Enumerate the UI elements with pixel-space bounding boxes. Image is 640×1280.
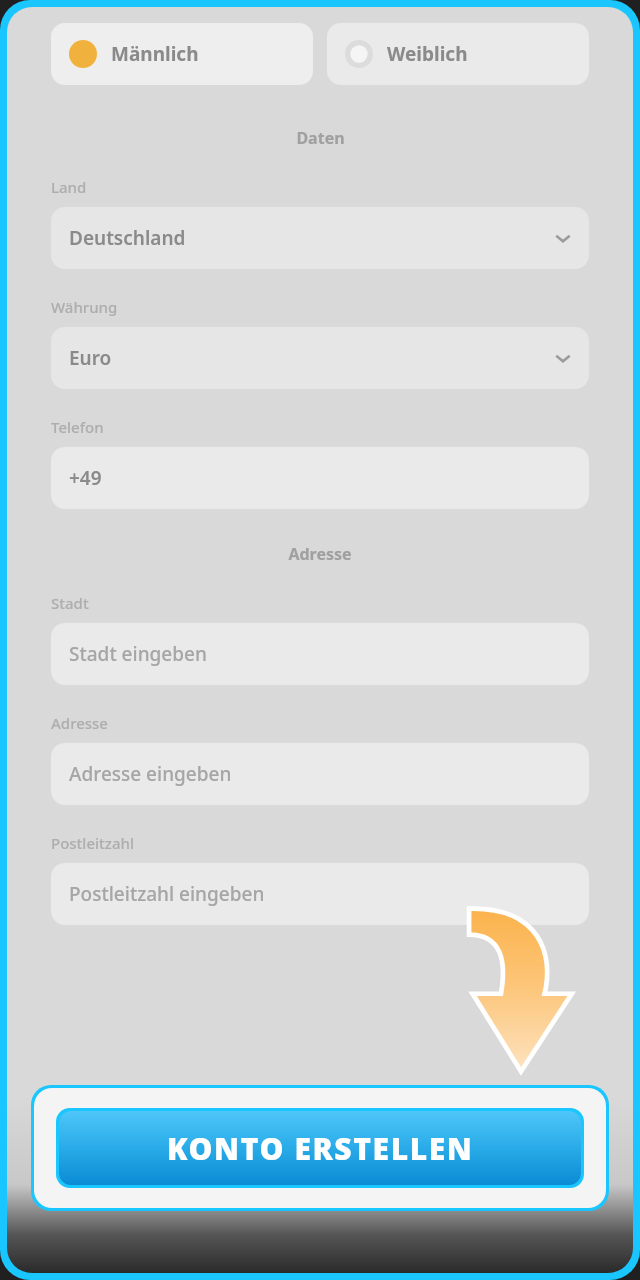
staticText: Weiblich xyxy=(387,41,468,67)
staticText: Stadt xyxy=(51,593,89,613)
staticText: Postleitzahl xyxy=(51,833,134,853)
staticText: KONTO ERSTELLEN xyxy=(167,1128,474,1169)
staticText: Männlich xyxy=(111,41,199,67)
staticText: Land xyxy=(51,177,87,197)
button[interactable]: Adresse eingeben xyxy=(51,743,589,805)
button[interactable]: KONTO ERSTELLEN xyxy=(59,1111,581,1185)
staticText: Adresse xyxy=(51,713,108,733)
staticText: Euro xyxy=(69,345,112,371)
staticText: Deutschland xyxy=(69,225,186,251)
staticText: Postleitzahl eingeben xyxy=(69,881,265,907)
staticText: +49 xyxy=(69,465,102,491)
button[interactable]: Postleitzahl eingeben xyxy=(51,863,589,925)
staticText: Adresse eingeben xyxy=(69,761,232,787)
button[interactable]: Männlich xyxy=(51,23,313,85)
staticText: Stadt eingeben xyxy=(69,641,207,667)
button[interactable]: +49 xyxy=(51,447,589,509)
staticText: Telefon xyxy=(51,417,104,437)
staticText: Daten xyxy=(296,127,345,149)
button[interactable]: Euro xyxy=(51,327,589,389)
button[interactable]: Weiblich xyxy=(327,23,589,85)
button[interactable]: Stadt eingeben xyxy=(51,623,589,685)
button[interactable]: Deutschland xyxy=(51,207,589,269)
staticText: Adresse xyxy=(288,543,352,565)
other: Hinweis nach unten xyxy=(462,892,580,1077)
staticText: Währung xyxy=(51,297,118,317)
